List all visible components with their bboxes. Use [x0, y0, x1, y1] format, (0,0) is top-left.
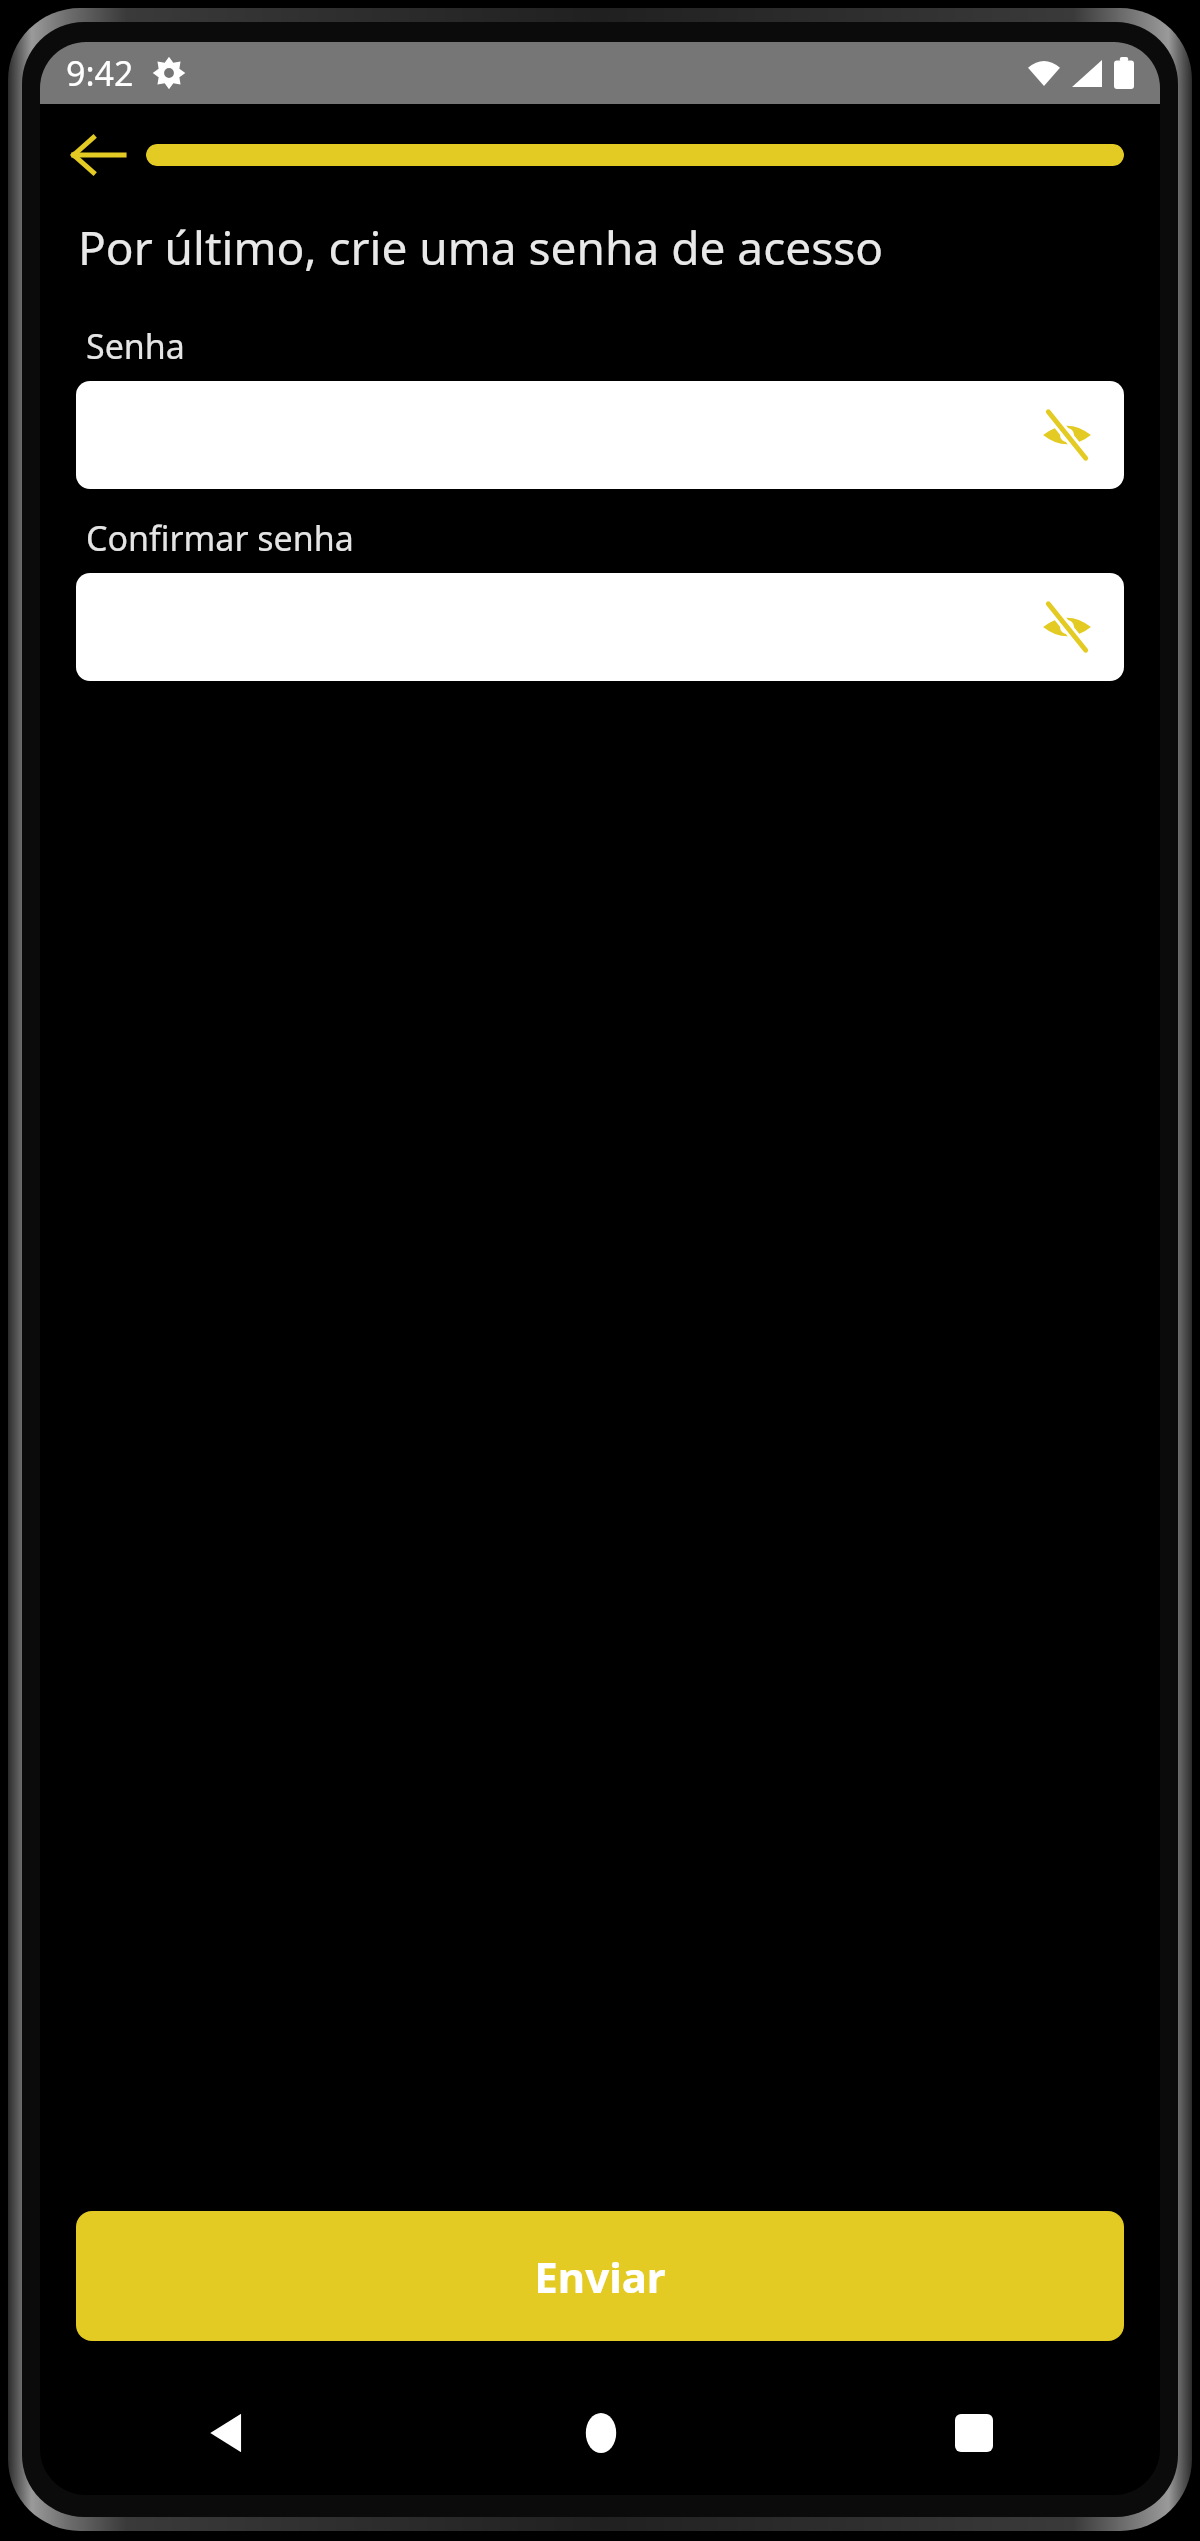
button[interactable]: Mostrar senha	[1030, 398, 1104, 472]
button[interactable]: Início	[414, 2385, 787, 2481]
button[interactable]: Voltar	[40, 2385, 414, 2481]
staticText: Confirmar senha	[86, 515, 354, 561]
button[interactable]: Voltar	[60, 120, 136, 190]
staticText: Enviar	[534, 2248, 666, 2305]
button[interactable]: Mostrar confirmação de senha	[76, 573, 1124, 681]
staticText: Senha	[86, 323, 185, 369]
button[interactable]: Mostrar senha	[76, 381, 1124, 489]
button[interactable]: Recentes	[787, 2385, 1160, 2481]
staticText: Por último, crie uma senha de acesso	[78, 216, 884, 279]
button[interactable]: Mostrar confirmação de senha	[1030, 590, 1104, 664]
staticText: 9:42	[66, 50, 134, 96]
button[interactable]: Enviar	[76, 2211, 1124, 2341]
